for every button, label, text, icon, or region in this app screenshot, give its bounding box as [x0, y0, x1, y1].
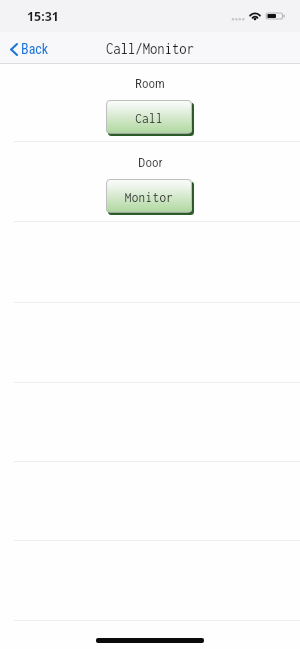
staticText: Call [106, 110, 192, 134]
staticText: Monitor [106, 189, 192, 213]
staticText: Room [135, 76, 165, 91]
staticText: Door [138, 155, 163, 170]
staticText: Call/Monitor [106, 40, 195, 57]
other: Home indicator [96, 638, 204, 643]
button[interactable]: Back [0, 37, 59, 59]
staticText: Back [21, 41, 49, 57]
button[interactable]: Call [106, 100, 194, 136]
button[interactable]: Monitor [106, 179, 194, 215]
staticText: 15:31 [27, 8, 59, 25]
